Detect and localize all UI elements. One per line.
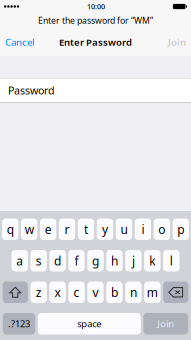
staticText: u: [120, 221, 127, 237]
button[interactable]: Join: [163, 28, 191, 56]
staticText: .?123: [8, 318, 30, 330]
staticText: j: [132, 253, 135, 269]
button[interactable]: r: [59, 218, 75, 240]
button[interactable]: Shift: [3, 281, 28, 303]
staticText: Cancel: [5, 35, 35, 49]
staticText: t: [84, 221, 88, 237]
button[interactable]: m: [144, 281, 161, 303]
button[interactable]: p: [173, 218, 189, 240]
button[interactable]: c: [68, 281, 85, 303]
button[interactable]: Cancel: [0, 28, 40, 56]
staticText: 10:00: [87, 2, 105, 11]
staticText: o: [158, 221, 165, 237]
staticText: d: [54, 253, 61, 269]
staticText: c: [73, 284, 79, 300]
staticText: a: [16, 253, 23, 269]
button[interactable]: b: [106, 281, 123, 303]
button[interactable]: w: [21, 218, 37, 240]
staticText: g: [92, 253, 99, 269]
button[interactable]: y: [97, 218, 113, 240]
staticText: Enter Password: [59, 35, 132, 49]
staticText: z: [36, 284, 42, 300]
staticText: e: [45, 221, 52, 237]
button[interactable]: u: [116, 218, 132, 240]
button[interactable]: f: [68, 250, 85, 271]
button[interactable]: i: [135, 218, 151, 240]
button[interactable]: t: [78, 218, 94, 240]
staticText: y: [102, 221, 108, 237]
staticText: s: [36, 253, 42, 269]
button[interactable]: z: [30, 281, 47, 303]
staticText: x: [55, 284, 61, 300]
staticText: h: [111, 253, 118, 269]
button[interactable]: a: [11, 250, 28, 271]
button[interactable]: g: [87, 250, 104, 271]
staticText: m: [147, 284, 158, 300]
button[interactable]: d: [49, 250, 66, 271]
button[interactable]: s: [30, 250, 47, 271]
staticText: r: [65, 221, 70, 237]
button[interactable]: k: [144, 250, 161, 271]
staticText: p: [177, 221, 184, 237]
staticText: k: [149, 253, 155, 269]
button[interactable]: e: [40, 218, 56, 240]
button[interactable]: h: [106, 250, 123, 271]
staticText: n: [130, 284, 137, 300]
staticText: l: [170, 253, 173, 269]
button[interactable]: v: [87, 281, 104, 303]
staticText: Join: [157, 318, 174, 330]
button[interactable]: q: [2, 218, 18, 240]
button[interactable]: x: [49, 281, 66, 303]
button[interactable]: Delete: [163, 281, 188, 303]
staticText: Enter the password for “WM”: [38, 15, 153, 26]
staticText: v: [92, 284, 98, 300]
staticText: f: [75, 253, 79, 269]
staticText: Password: [8, 83, 55, 97]
button[interactable]: n: [125, 281, 142, 303]
button[interactable]: Join: [143, 313, 188, 334]
button[interactable]: j: [125, 250, 142, 271]
staticText: b: [111, 284, 118, 300]
button[interactable]: l: [163, 250, 179, 271]
staticText: i: [141, 221, 144, 237]
button[interactable]: space: [38, 313, 141, 334]
staticText: w: [25, 221, 34, 237]
staticText: q: [7, 221, 14, 237]
button[interactable]: o: [154, 218, 170, 240]
button[interactable]: .?123: [3, 313, 35, 334]
staticText: Join: [168, 35, 186, 49]
staticText: space: [77, 318, 101, 330]
